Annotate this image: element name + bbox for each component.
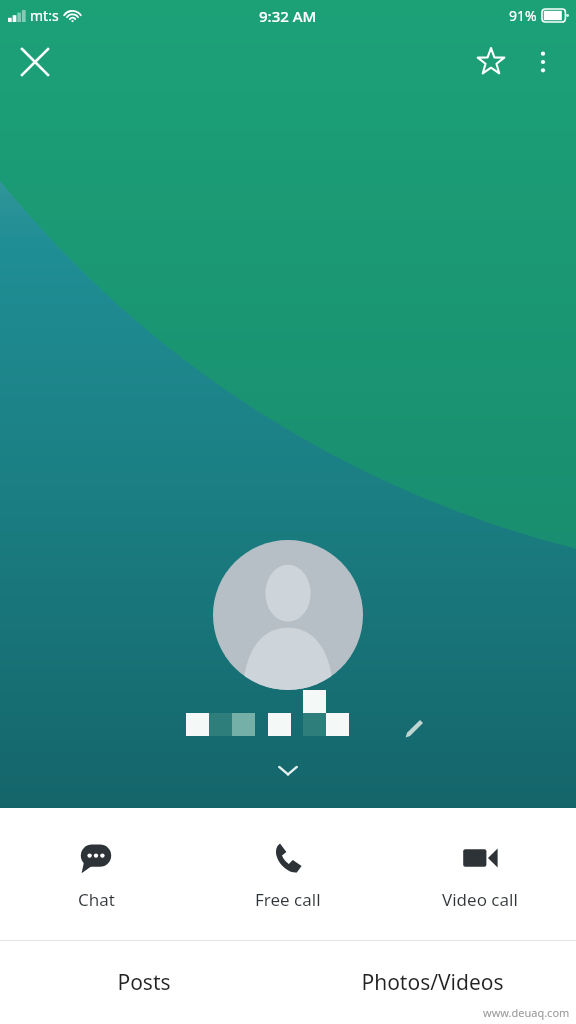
staticText: Photos/Videos xyxy=(361,968,504,997)
button[interactable]: Close xyxy=(8,35,62,89)
staticText: mt:s xyxy=(30,6,59,25)
button[interactable]: Photos/Videos xyxy=(288,941,576,1024)
staticText: www.deuaq.com xyxy=(483,1005,570,1020)
button[interactable]: Favorite xyxy=(464,35,518,89)
button[interactable]: Chat xyxy=(0,808,192,940)
button[interactable]: Video call xyxy=(384,808,576,940)
staticText: 91% xyxy=(509,6,537,25)
staticText: Video call xyxy=(442,888,518,911)
button[interactable]: Profile photo xyxy=(213,540,363,690)
button[interactable]: Edit name xyxy=(396,710,432,746)
staticText: Chat xyxy=(78,888,115,911)
button[interactable]: More options xyxy=(518,37,568,87)
staticText: Free call xyxy=(255,888,321,911)
staticText: Posts xyxy=(117,968,171,997)
button[interactable]: Expand xyxy=(268,750,308,790)
staticText: 9:32 AM xyxy=(259,6,317,26)
button[interactable]: Free call xyxy=(192,808,384,940)
button[interactable]: Posts xyxy=(0,941,288,1024)
